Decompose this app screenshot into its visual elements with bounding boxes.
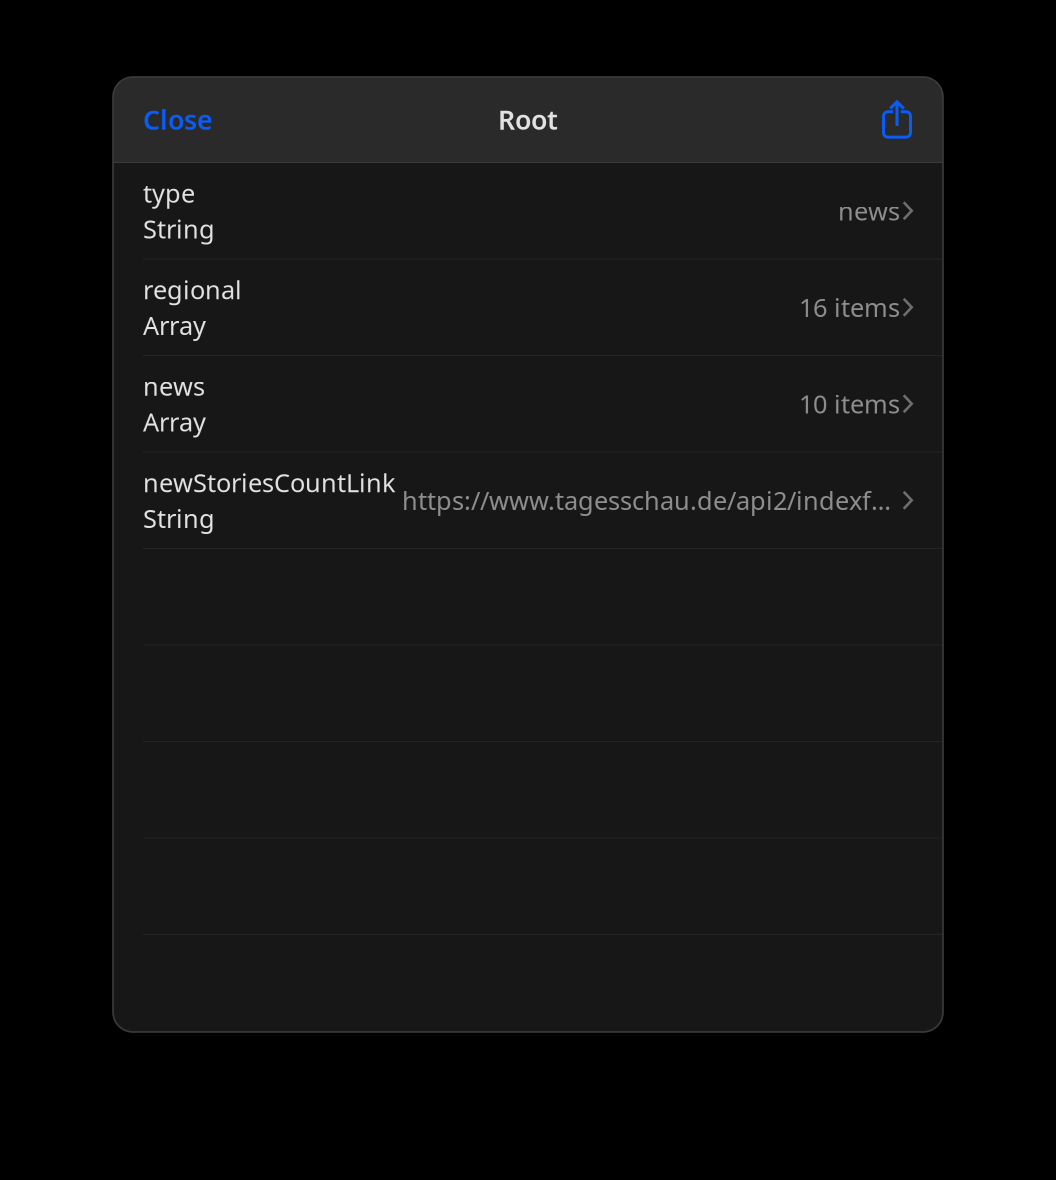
- staticText: Root: [498, 102, 558, 137]
- staticText: https://www.tagesschau.de/api2/indexfeed…: [402, 483, 900, 517]
- staticText: newStoriesCountLink: [143, 466, 396, 499]
- staticText: String: [143, 501, 215, 535]
- button[interactable]: type: [113, 163, 943, 259]
- staticText: Close: [143, 102, 213, 137]
- staticText: type: [143, 176, 195, 210]
- staticText: 10 items: [799, 387, 900, 420]
- staticText: Array: [143, 405, 206, 438]
- staticText: String: [143, 212, 215, 245]
- staticText: regional: [143, 273, 242, 306]
- staticText: news: [838, 194, 900, 227]
- button[interactable]: newStoriesCountLink: [113, 452, 943, 549]
- staticText: Array: [143, 308, 206, 342]
- staticText: news: [143, 369, 205, 403]
- button[interactable]: Close: [113, 77, 235, 162]
- staticText: 16 items: [799, 290, 900, 324]
- button[interactable]: news: [113, 356, 943, 452]
- button[interactable]: Share: [860, 77, 943, 162]
- button[interactable]: regional: [113, 259, 943, 356]
